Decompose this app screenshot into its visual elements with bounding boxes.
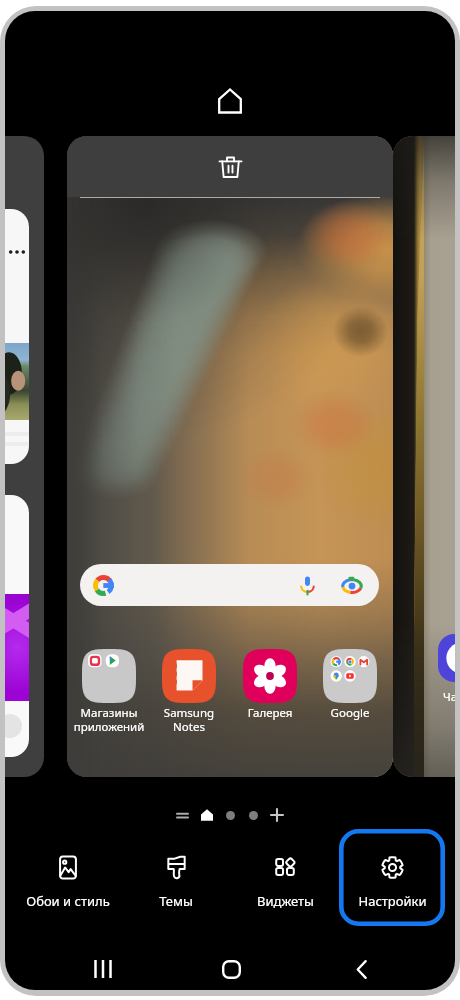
staticText: Магазины приложений <box>67 705 154 735</box>
button[interactable]: Samsung Notes <box>144 649 234 727</box>
button[interactable]: Виджеты <box>232 829 338 926</box>
button[interactable]: Recent apps <box>81 947 125 990</box>
button[interactable]: Home <box>209 947 253 990</box>
staticText: Темы <box>159 892 193 910</box>
staticText: Виджеты <box>257 892 314 910</box>
staticText: Часы <box>443 689 455 705</box>
button[interactable]: Back <box>339 947 383 990</box>
button[interactable]: Home screen <box>207 78 253 124</box>
staticText: Настройки <box>358 892 427 910</box>
button[interactable]: Delete page <box>67 136 393 777</box>
button[interactable]: Next page <box>393 136 455 777</box>
button[interactable]: Магазины приложений <box>67 649 154 727</box>
button[interactable]: Google search <box>80 564 379 606</box>
button[interactable]: Previous page <box>5 136 44 777</box>
staticText: Samsung Notes <box>144 705 234 735</box>
button[interactable]: Обои и стиль <box>15 829 121 926</box>
button[interactable]: Темы <box>123 829 229 926</box>
button[interactable]: Настройки <box>339 829 445 926</box>
staticText: Google <box>305 705 393 721</box>
button[interactable]: Галерея <box>225 649 315 727</box>
staticText: Галерея <box>225 705 315 721</box>
staticText: Обои и стиль <box>26 892 110 910</box>
button[interactable]: Google <box>305 649 393 727</box>
button[interactable]: Delete page <box>207 144 253 190</box>
